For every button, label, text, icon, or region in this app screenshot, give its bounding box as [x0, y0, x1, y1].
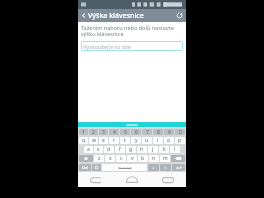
- button[interactable]: c: [116, 155, 126, 162]
- staticText: 8: [157, 129, 160, 135]
- staticText: d: [107, 146, 111, 153]
- button[interactable]: Enter: [172, 164, 185, 171]
- button[interactable]: n: [149, 155, 159, 162]
- button[interactable]: d: [104, 146, 114, 153]
- staticText: n: [152, 155, 156, 162]
- button[interactable]: h: [137, 146, 147, 153]
- button[interactable]: b: [138, 155, 148, 162]
- staticText: 9: [168, 129, 171, 135]
- staticText: t: [124, 137, 126, 144]
- button[interactable]: t: [120, 137, 130, 144]
- button[interactable]: 4: [109, 129, 119, 135]
- staticText: z: [98, 155, 101, 162]
- staticText: Tažením nahoru nebo dolů nastavte výšku …: [81, 24, 183, 38]
- button[interactable]: Mezerník: [102, 164, 147, 171]
- staticText: w: [92, 137, 96, 144]
- button[interactable]: v: [127, 155, 137, 162]
- button[interactable]: q: [79, 137, 88, 144]
- button[interactable]: 0: [175, 129, 185, 135]
- button[interactable]: w: [89, 137, 98, 144]
- staticText: p: [178, 137, 182, 144]
- staticText: y: [135, 137, 138, 144]
- staticText: c: [120, 155, 123, 162]
- button[interactable]: 9: [164, 129, 174, 135]
- button[interactable]: 1: [79, 129, 88, 135]
- button[interactable]: Obnovit: [172, 9, 186, 22]
- button[interactable]: Smazat: [171, 155, 185, 162]
- button[interactable]: Přehled aplikací: [150, 172, 186, 187]
- staticText: 1: [82, 129, 85, 135]
- staticText: Vyzkoušejte to zde: [83, 43, 131, 50]
- button[interactable]: s: [94, 146, 103, 153]
- staticText: Výška klávesnice: [88, 11, 144, 21]
- staticText: l: [174, 146, 176, 153]
- button[interactable]: g: [126, 146, 136, 153]
- button[interactable]: Výška klávesnice: [78, 9, 172, 22]
- button[interactable]: l: [170, 146, 180, 153]
- staticText: 7: [146, 129, 149, 135]
- button[interactable]: m: [160, 155, 170, 162]
- button[interactable]: Tečka: [160, 164, 171, 171]
- button[interactable]: Domů: [114, 172, 150, 187]
- staticText: k: [163, 146, 166, 153]
- button[interactable]: f: [115, 146, 125, 153]
- button[interactable]: 6: [131, 129, 141, 135]
- button[interactable]: p: [175, 137, 185, 144]
- staticText: m: [163, 155, 168, 162]
- button[interactable]: x: [105, 155, 115, 162]
- button[interactable]: o: [164, 137, 174, 144]
- staticText: f: [119, 146, 121, 153]
- staticText: 2: [92, 129, 95, 135]
- button[interactable]: y: [131, 137, 141, 144]
- staticText: 6: [135, 129, 138, 135]
- staticText: s: [97, 146, 100, 153]
- staticText: b: [141, 155, 145, 162]
- staticText: a: [87, 146, 90, 153]
- staticText: r: [113, 137, 116, 144]
- button[interactable]: r: [109, 137, 119, 144]
- button[interactable]: j: [148, 146, 158, 153]
- button[interactable]: 3: [99, 129, 108, 135]
- staticText: o: [167, 137, 171, 144]
- button[interactable]: a: [84, 146, 93, 153]
- button[interactable]: u: [142, 137, 152, 144]
- staticText: 0: [179, 129, 182, 135]
- staticText: j: [152, 146, 154, 153]
- button[interactable]: 5: [120, 129, 130, 135]
- staticText: 5: [124, 129, 127, 135]
- button[interactable]: i: [153, 137, 163, 144]
- staticText: g: [129, 146, 133, 153]
- staticText: 4: [113, 129, 116, 135]
- staticText: v: [131, 155, 134, 162]
- staticText: 3: [102, 129, 105, 135]
- button[interactable]: 2: [89, 129, 98, 135]
- button[interactable]: Shift: [79, 155, 93, 162]
- button[interactable]: k: [159, 146, 169, 153]
- staticText: h: [140, 146, 144, 153]
- staticText: Ctrl: [82, 165, 88, 170]
- button[interactable]: z: [94, 155, 104, 162]
- staticText: q: [82, 137, 86, 144]
- button[interactable]: Čárka: [148, 164, 159, 171]
- button[interactable]: 7: [142, 129, 152, 135]
- staticText: i: [157, 137, 159, 144]
- staticText: e: [102, 137, 105, 144]
- button[interactable]: Zpět: [78, 172, 114, 187]
- staticText: u: [145, 137, 149, 144]
- button[interactable]: Nastavení: [92, 164, 101, 171]
- staticText: x: [109, 155, 112, 162]
- button[interactable]: e: [99, 137, 108, 144]
- button[interactable]: Vyzkoušejte to zde: [81, 41, 183, 51]
- button[interactable]: Ctrl: [79, 164, 91, 171]
- button[interactable]: 8: [153, 129, 163, 135]
